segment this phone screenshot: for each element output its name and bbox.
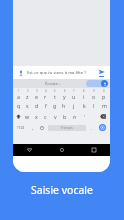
button[interactable]: 8 — [79, 89, 89, 100]
button[interactable]: c — [41, 111, 50, 122]
staticText: 0 — [103, 89, 105, 93]
staticText: e — [35, 93, 38, 100]
staticText: j — [73, 102, 75, 109]
staticText: 6 — [64, 89, 66, 93]
button[interactable]: , — [28, 122, 37, 133]
staticText: u — [72, 93, 76, 100]
staticText: 9 — [93, 89, 95, 93]
staticText: y — [63, 93, 66, 100]
staticText: 8 — [83, 89, 85, 93]
button[interactable]: Supprimer — [96, 111, 109, 122]
staticText: d — [35, 102, 39, 109]
staticText: z — [26, 93, 29, 100]
button[interactable]: Français — [48, 125, 86, 131]
button[interactable]: q — [14, 100, 23, 111]
staticText: o — [92, 93, 96, 100]
staticText: Est-ce que tu viens à ma fête ? — [27, 70, 96, 76]
staticText: 3 — [36, 89, 38, 93]
button[interactable]: Emoji — [37, 122, 47, 133]
staticText: 5 — [54, 89, 56, 93]
button[interactable]: 2 — [23, 89, 32, 100]
staticText: 2 — [27, 89, 29, 93]
button[interactable]: j — [69, 100, 79, 111]
staticText: h — [62, 102, 66, 109]
button[interactable]: s — [23, 100, 32, 111]
button[interactable]: n — [70, 111, 80, 122]
staticText: w — [25, 113, 30, 120]
button[interactable]: Accueil — [46, 144, 78, 156]
button[interactable]: k — [79, 100, 89, 111]
staticText: ' — [84, 113, 86, 120]
staticText: m — [102, 102, 107, 109]
staticText: s — [26, 102, 29, 109]
staticText: q — [17, 102, 21, 109]
staticText: Écoute… — [45, 81, 61, 86]
staticText: f — [45, 102, 47, 109]
staticText: Saisie vocale — [0, 183, 124, 197]
staticText: i — [83, 93, 85, 100]
button[interactable]: Saisie vocale — [96, 122, 109, 133]
button[interactable]: 5 — [50, 89, 59, 100]
staticText: b — [63, 113, 67, 120]
button[interactable]: . — [87, 122, 96, 133]
button[interactable]: 3 — [32, 89, 41, 100]
staticText: 7 — [73, 89, 75, 93]
button[interactable]: ?123 — [14, 122, 28, 133]
button[interactable]: b — [60, 111, 70, 122]
button[interactable]: d — [32, 100, 41, 111]
button[interactable]: Retour — [13, 144, 46, 156]
button[interactable]: v — [50, 111, 60, 122]
staticText: n — [73, 113, 77, 120]
button[interactable]: Micro vocal — [86, 80, 108, 87]
staticText: k — [83, 102, 86, 109]
button[interactable]: h — [59, 100, 69, 111]
staticText: t — [54, 93, 56, 100]
staticText: g — [53, 102, 57, 109]
staticText: l — [93, 102, 95, 109]
button[interactable]: Majuscule — [14, 111, 23, 122]
staticText: 1 — [18, 89, 20, 93]
staticText: Français — [61, 126, 73, 130]
staticText: p — [102, 93, 106, 100]
button[interactable]: 7 — [69, 89, 79, 100]
button[interactable]: 9 — [89, 89, 99, 100]
button[interactable]: m — [99, 100, 109, 111]
staticText: a — [17, 93, 20, 100]
staticText: c — [44, 113, 47, 120]
button[interactable]: 1 — [14, 89, 23, 100]
button[interactable]: f — [41, 100, 50, 111]
button[interactable]: l — [89, 100, 99, 111]
button[interactable]: Envoyer — [96, 67, 107, 78]
button[interactable]: Microphone — [13, 66, 110, 79]
staticText: . — [91, 125, 93, 131]
button[interactable]: x — [32, 111, 41, 122]
button[interactable]: Microphone — [16, 68, 25, 77]
button[interactable]: g — [50, 100, 59, 111]
button[interactable]: Applications récentes — [78, 144, 110, 156]
staticText: v — [54, 113, 57, 120]
button[interactable]: ' — [80, 111, 90, 122]
staticText: , — [32, 125, 34, 131]
staticText: 4 — [45, 89, 47, 93]
staticText: x — [35, 113, 38, 120]
button[interactable]: w — [23, 111, 32, 122]
button[interactable]: 0 — [99, 89, 109, 100]
button[interactable]: 6 — [59, 89, 69, 100]
button[interactable]: 4 — [41, 89, 50, 100]
staticText: r — [44, 93, 47, 100]
staticText: ?123 — [17, 125, 25, 130]
